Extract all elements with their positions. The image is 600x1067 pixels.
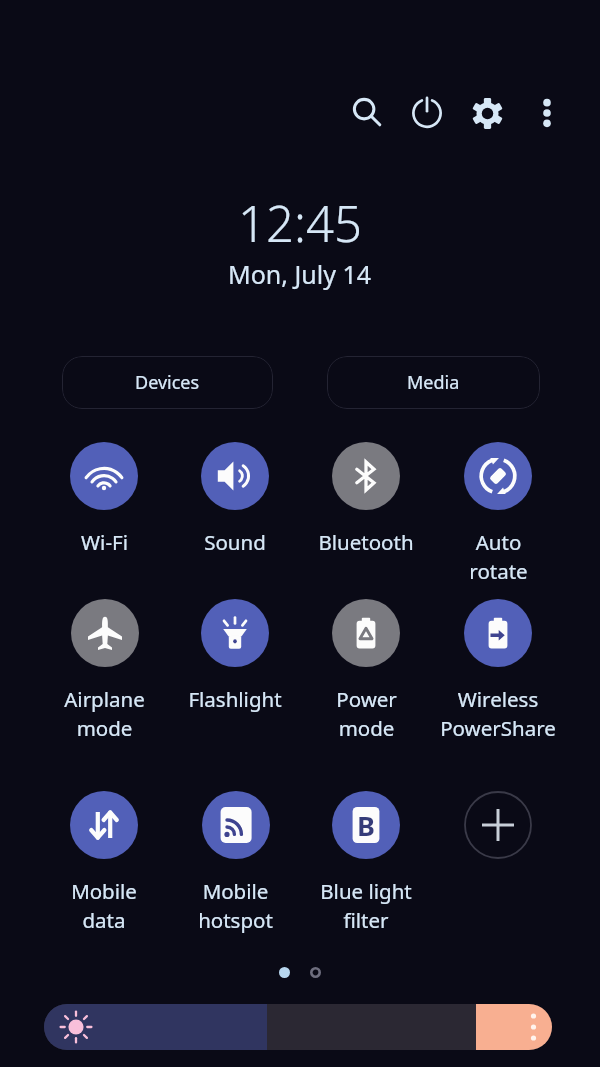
button[interactable]: Auto rotate: [434, 442, 562, 585]
button[interactable]: Bluetooth: [302, 442, 430, 556]
staticText: Sound: [204, 528, 266, 556]
staticText: Media: [407, 370, 460, 395]
staticText: 12:45: [238, 190, 362, 257]
button[interactable]: Brightness: [44, 1004, 552, 1050]
button[interactable]: Flashlight: [171, 599, 299, 713]
staticText: Mon, July 14: [228, 257, 372, 291]
button[interactable]: Settings: [463, 89, 511, 137]
staticText: B: [357, 807, 375, 844]
button[interactable]: Mobile data: [40, 791, 168, 934]
button[interactable]: More options: [523, 89, 571, 137]
button[interactable]: B: [302, 791, 430, 934]
staticText: Wi-Fi: [81, 528, 128, 556]
button[interactable]: Power: [403, 88, 451, 136]
staticText: Devices: [135, 370, 200, 395]
staticText: Wireless PowerShare: [440, 685, 556, 742]
staticText: Auto rotate: [469, 528, 528, 585]
staticText: Blue light filter: [320, 877, 412, 934]
staticText: Bluetooth: [318, 528, 414, 556]
button[interactable]: Wireless PowerShare: [434, 599, 562, 742]
staticText: Power mode: [336, 685, 397, 742]
button[interactable]: Search: [343, 88, 391, 136]
staticText: Flashlight: [188, 685, 282, 713]
staticText: Mobile data: [71, 877, 137, 934]
button[interactable]: Devices: [62, 356, 273, 409]
staticText: Mobile hotspot: [198, 877, 273, 934]
staticText: Airplane mode: [64, 685, 145, 742]
button[interactable]: Power mode: [302, 599, 430, 742]
button[interactable]: Mobile hotspot: [171, 791, 299, 934]
button[interactable]: Add tile: [464, 791, 532, 859]
button[interactable]: Airplane mode: [40, 599, 168, 742]
button[interactable]: Media: [327, 356, 540, 409]
button[interactable]: Wi-Fi: [40, 442, 168, 556]
button[interactable]: Sound: [171, 442, 299, 556]
